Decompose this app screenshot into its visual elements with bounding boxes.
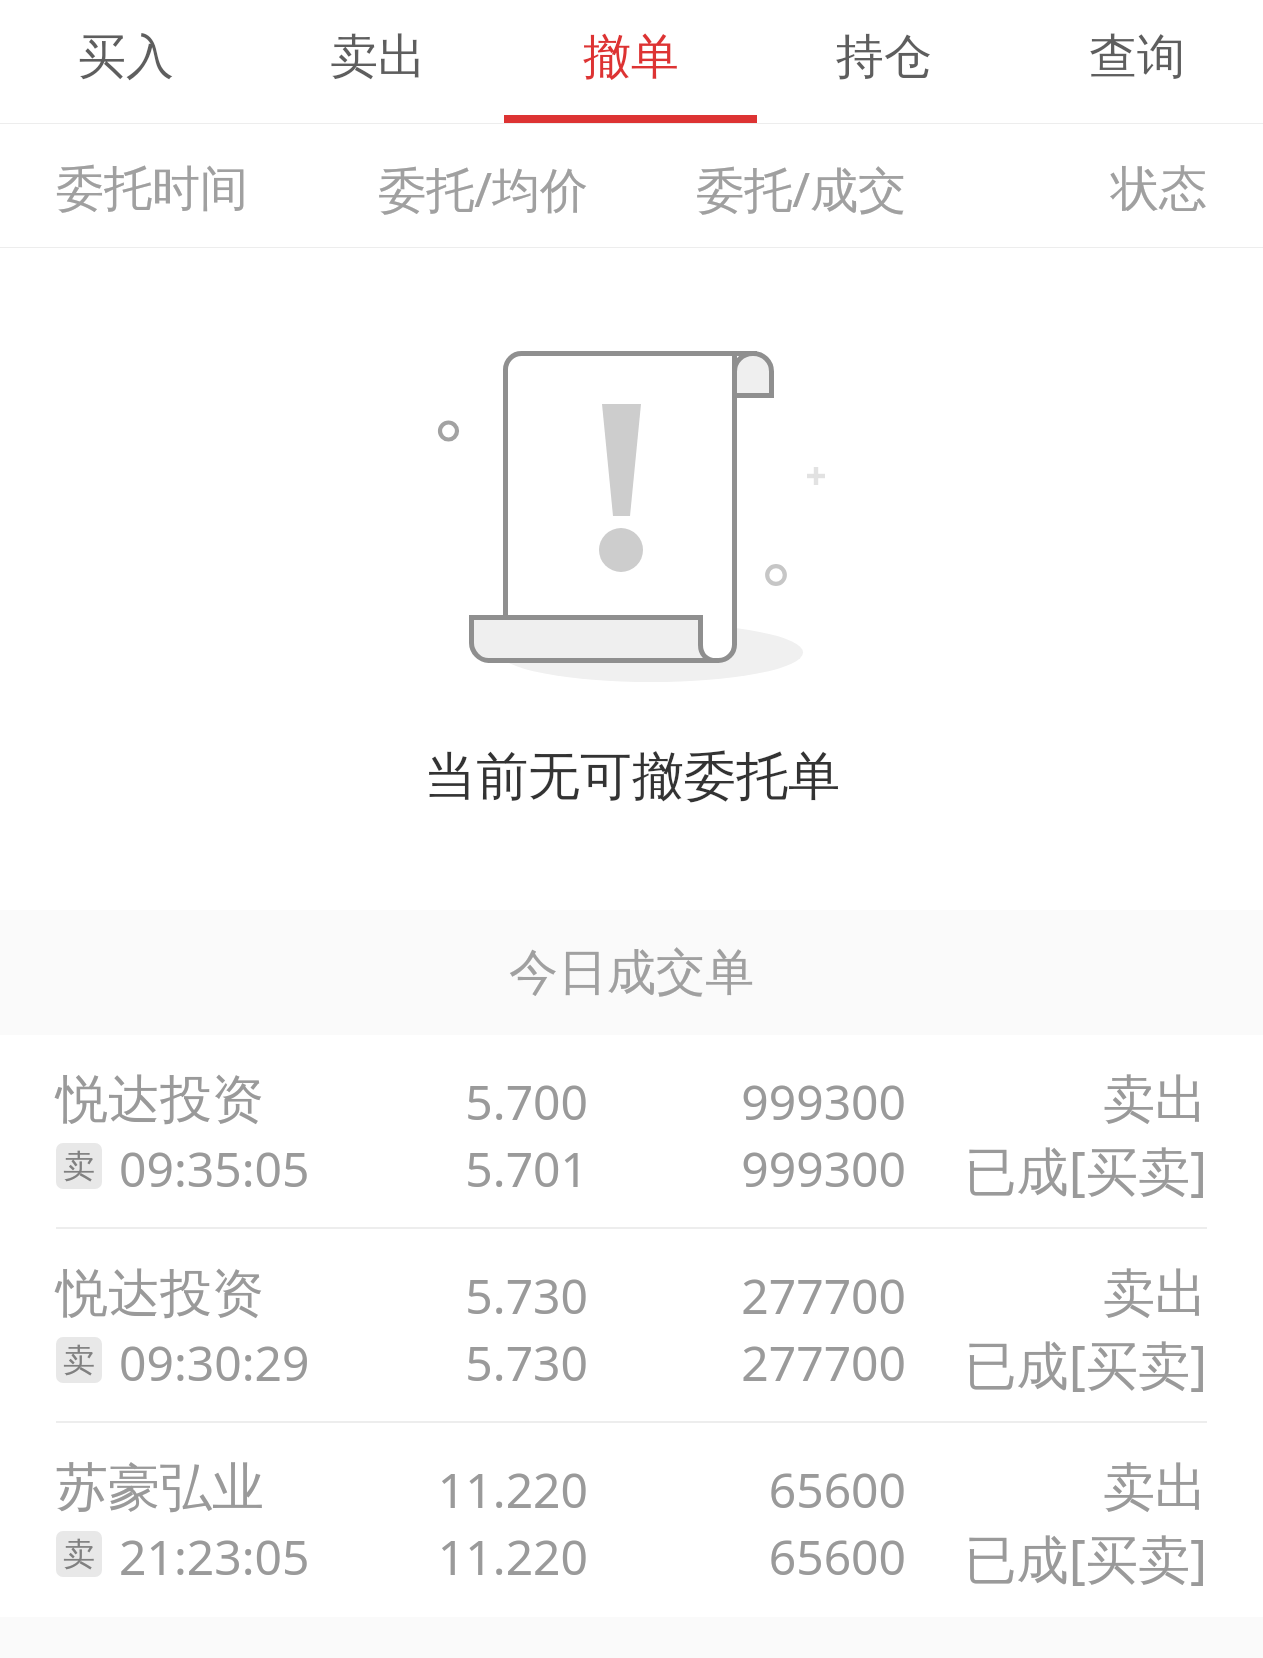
staticText: 已成[买卖] [0,1522,1207,1593]
button[interactable]: 查询 [1010,0,1263,124]
button[interactable]: 卖出 [252,0,504,124]
staticText: 今日成交单 [509,942,754,1004]
staticText: 委托时间 [56,159,248,219]
staticText: 委托/均价 [0,156,588,222]
staticText: 委托/成交 [0,156,906,222]
staticText: 当前无可撤委托单 [424,744,840,810]
staticText: 09:30:29 [119,1330,310,1395]
staticText: 5.730 [0,1330,588,1395]
staticText: 65600 [0,1524,906,1589]
staticText: 悦达投资 [56,1067,264,1133]
button[interactable]: 悦达投资 [0,1229,1263,1423]
button[interactable]: 撤单 [504,0,757,124]
staticText: 65600 [0,1457,906,1522]
staticText: 持仓 [836,27,932,87]
staticText: 已成[买卖] [0,1134,1207,1205]
staticText: 卖出 [0,1067,1207,1133]
staticText: 卖出 [330,27,426,87]
staticText: 999300 [0,1069,906,1134]
staticText: 5.701 [0,1136,588,1201]
staticText: 卖出 [0,1261,1207,1327]
staticText: 卖出 [0,1455,1207,1521]
staticText: 卖 [63,1340,95,1380]
staticText: 277700 [0,1263,906,1328]
button[interactable]: 持仓 [757,0,1010,124]
button[interactable]: 苏豪弘业 [0,1423,1263,1617]
staticText: 999300 [0,1136,906,1201]
staticText: 277700 [0,1330,906,1395]
staticText: 5.730 [0,1263,588,1328]
staticText: 苏豪弘业 [56,1455,264,1521]
staticText: 11.220 [0,1524,588,1589]
staticText: 卖 [63,1534,95,1574]
staticText: 5.700 [0,1069,588,1134]
staticText: 11.220 [0,1457,588,1522]
button[interactable]: 悦达投资 [0,1035,1263,1229]
staticText: 已成[买卖] [0,1328,1207,1399]
staticText: 卖 [63,1146,95,1186]
staticText: 21:23:05 [119,1524,310,1589]
staticText: 09:35:05 [119,1136,310,1201]
staticText: 撤单 [583,27,679,87]
staticText: 查询 [1089,27,1185,87]
button[interactable]: 买入 [0,0,252,124]
staticText: 买入 [78,27,174,87]
staticText: 状态 [0,159,1207,219]
staticText: 悦达投资 [56,1261,264,1327]
